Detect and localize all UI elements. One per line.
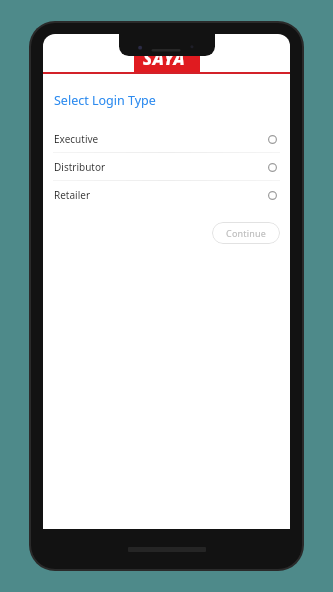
staticText: Distributor xyxy=(54,160,106,174)
staticText: Continue xyxy=(226,227,267,239)
button[interactable]: Executive xyxy=(43,125,290,152)
staticText: Select Login Type xyxy=(54,92,156,109)
other: Select Retailer xyxy=(265,188,279,202)
other: Select Distributor xyxy=(265,160,279,174)
other: Select Executive xyxy=(265,132,279,146)
staticText: SAYA xyxy=(143,47,186,70)
button[interactable]: Distributor xyxy=(43,153,290,180)
button[interactable]: Retailer xyxy=(43,181,290,208)
button[interactable]: Continue xyxy=(212,222,280,244)
staticText: Executive xyxy=(54,132,99,146)
staticText: Retailer xyxy=(54,188,91,202)
